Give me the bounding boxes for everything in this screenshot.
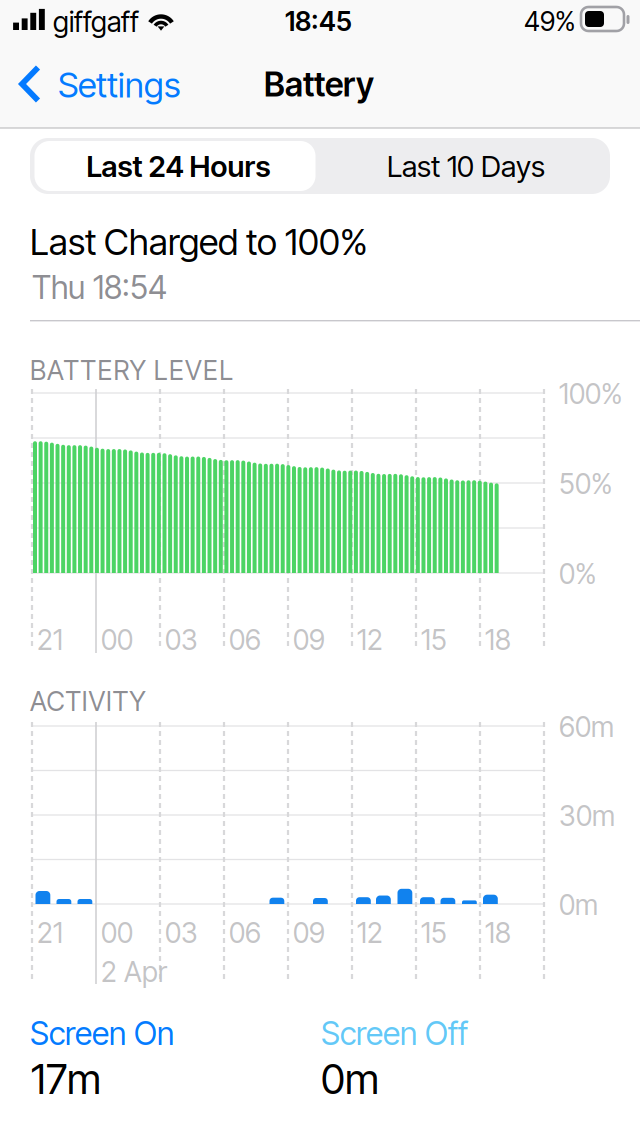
staticText: 06 [229, 916, 261, 950]
staticText: 21 [37, 623, 63, 657]
staticText: 0% [559, 557, 596, 591]
staticText: 12 [357, 916, 383, 950]
button[interactable]: Last 10 Days [325, 141, 606, 191]
staticText: 21 [37, 916, 63, 950]
staticText: Battery [264, 64, 374, 104]
staticText: 60m [559, 710, 614, 744]
staticText: 18 [485, 916, 511, 950]
staticText: 00 [101, 916, 133, 950]
staticText: 18 [485, 623, 511, 657]
staticText: Last 24 Hours [86, 149, 270, 184]
staticText: BATTERY LEVEL [30, 354, 233, 386]
staticText: 09 [293, 916, 325, 950]
staticText: giffgaff [53, 5, 139, 39]
staticText: Thu 18:54 [32, 268, 167, 307]
staticText: 09 [293, 623, 325, 657]
staticText: Settings [58, 64, 180, 106]
staticText: 12 [357, 623, 383, 657]
staticText: 49% [524, 5, 575, 37]
staticText: 03 [165, 623, 198, 657]
staticText: Last 10 Days [387, 149, 545, 184]
staticText: 100% [559, 377, 622, 411]
staticText: 0m [559, 888, 598, 922]
staticText: 0m [321, 1054, 379, 1104]
staticText: ACTIVITY [30, 685, 145, 717]
staticText: 2 Apr [101, 955, 167, 989]
staticText: 18:45 [285, 5, 352, 37]
staticText: 03 [165, 916, 198, 950]
staticText: 30m [559, 799, 615, 833]
staticText: 06 [229, 623, 261, 657]
staticText: 17m [31, 1054, 101, 1104]
staticText: 15 [421, 916, 447, 950]
staticText: 00 [101, 623, 133, 657]
staticText: 50% [559, 467, 612, 501]
button[interactable]: Settings [0, 40, 200, 128]
staticText: Screen On [30, 1014, 174, 1053]
staticText: 15 [421, 623, 447, 657]
button[interactable]: Last 24 Hours [34, 141, 315, 191]
staticText: Screen Off [321, 1014, 468, 1053]
staticText: Last Charged to 100% [30, 220, 368, 264]
